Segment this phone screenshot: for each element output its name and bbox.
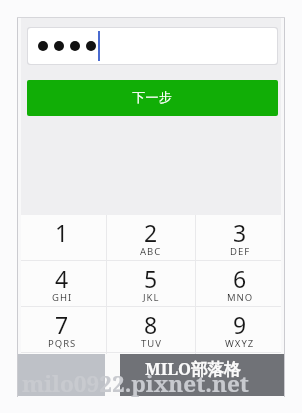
staticText: MNO xyxy=(227,291,254,304)
staticText: 3 xyxy=(233,217,247,248)
staticText: 7 xyxy=(55,309,69,340)
staticText: milo0922.pixnet.net xyxy=(22,368,249,399)
button[interactable]: 下一步 xyxy=(27,80,278,116)
staticText: TUV xyxy=(141,337,162,350)
button[interactable]: 2 xyxy=(107,215,195,260)
staticText: JKL xyxy=(143,291,160,304)
button[interactable] xyxy=(28,28,277,64)
staticText: 9 xyxy=(233,309,247,340)
staticText: MILO部落格 xyxy=(145,357,241,380)
staticText: 6 xyxy=(233,263,247,294)
button[interactable]: 7 xyxy=(18,307,106,352)
button[interactable]: 9 xyxy=(196,307,284,352)
button[interactable]: 5 xyxy=(107,261,195,306)
button[interactable] xyxy=(196,353,284,395)
staticText: ABC xyxy=(140,245,162,258)
button[interactable] xyxy=(18,353,106,395)
staticText: 2 xyxy=(144,217,158,248)
staticText: 1 xyxy=(55,217,69,248)
staticText: 0 xyxy=(144,355,158,386)
button[interactable]: 6 xyxy=(196,261,284,306)
button[interactable]: 4 xyxy=(18,261,106,306)
staticText: WXYZ xyxy=(225,337,255,350)
staticText: PQRS xyxy=(48,337,77,350)
staticText: 下一步 xyxy=(132,89,173,105)
staticText: 8 xyxy=(144,309,158,340)
staticText: GHI xyxy=(52,291,73,304)
button[interactable]: 8 xyxy=(107,307,195,352)
staticText: 5 xyxy=(144,263,158,294)
staticText: DEF xyxy=(230,245,251,258)
button[interactable]: 1 xyxy=(18,215,106,260)
button[interactable]: 3 xyxy=(196,215,284,260)
button[interactable]: 0 xyxy=(107,353,195,395)
staticText: 4 xyxy=(55,263,69,294)
